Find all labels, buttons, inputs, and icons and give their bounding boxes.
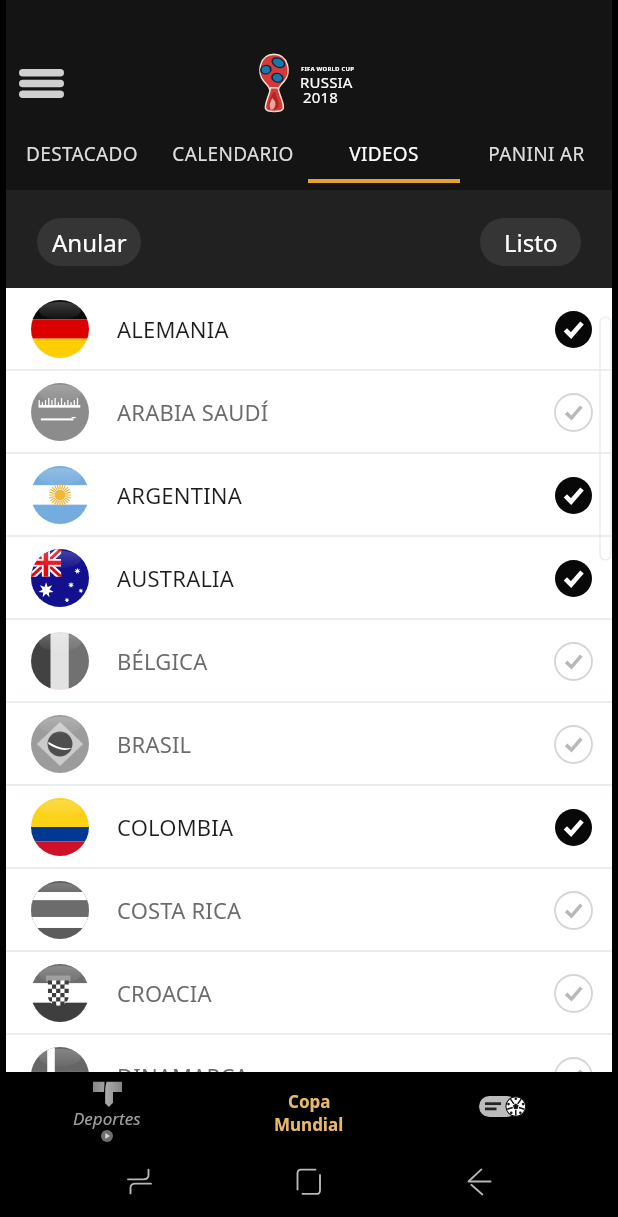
staticText: BRASIL: [117, 729, 192, 759]
button[interactable]: Selected: [551, 805, 595, 849]
button[interactable]: ARGENTINA: [6, 454, 612, 535]
staticText: FIFA WORLD CUP: [301, 65, 355, 73]
button[interactable]: Recents: [115, 1157, 163, 1205]
staticText: CALENDARIO: [172, 141, 294, 167]
staticText: Copa: [288, 1090, 331, 1113]
button[interactable]: Anular: [37, 218, 141, 266]
staticText: 2018: [303, 87, 339, 107]
staticText: ARABIA SAUDÍ: [117, 397, 269, 427]
button[interactable]: Selected: [551, 473, 595, 517]
button[interactable]: COSTA RICA: [6, 869, 612, 950]
button[interactable]: Futbol Mode: [410, 1072, 612, 1145]
button[interactable]: CALENDARIO: [157, 130, 308, 190]
button[interactable]: Not selected: [551, 722, 595, 766]
button[interactable]: VIDEOS: [308, 130, 460, 190]
staticText: AUSTRALIA: [117, 563, 235, 593]
staticText: BÉLGICA: [117, 646, 208, 676]
staticText: Listo: [504, 226, 558, 259]
button[interactable]: Selected: [551, 556, 595, 600]
button[interactable]: ARABIA SAUDÍ: [6, 371, 612, 452]
button[interactable]: Menu: [14, 56, 68, 110]
staticText: DESTACADO: [26, 141, 138, 167]
button[interactable]: Not selected: [551, 971, 595, 1015]
button[interactable]: Not selected: [551, 888, 595, 932]
button[interactable]: Not selected: [551, 639, 595, 683]
staticText: PANINI AR: [488, 141, 585, 167]
staticText: DINAMARCA: [117, 1061, 249, 1072]
staticText: Anular: [52, 226, 127, 259]
button[interactable]: CROACIA: [6, 952, 612, 1033]
button[interactable]: Not selected: [551, 390, 595, 434]
staticText: COLOMBIA: [117, 812, 234, 842]
button[interactable]: Listo: [480, 218, 581, 266]
button[interactable]: Selected: [551, 307, 595, 351]
button[interactable]: Back: [455, 1157, 503, 1205]
button[interactable]: Not selected: [551, 1054, 595, 1072]
button[interactable]: DINAMARCA: [6, 1035, 612, 1072]
staticText: ALEMANIA: [117, 314, 229, 344]
button[interactable]: Home: [284, 1157, 332, 1205]
staticText: RUSSIA: [300, 72, 353, 92]
button[interactable]: PANINI AR: [460, 130, 612, 190]
staticText: ARGENTINA: [117, 480, 242, 510]
button[interactable]: Telemundo Deportes: [6, 1072, 208, 1145]
staticText: COSTA RICA: [117, 895, 242, 925]
staticText: VIDEOS: [349, 141, 419, 167]
button[interactable]: Copa: [208, 1072, 410, 1145]
button[interactable]: BÉLGICA: [6, 620, 612, 701]
staticText: CROACIA: [117, 978, 212, 1008]
staticText: Deportes: [73, 1107, 141, 1130]
button[interactable]: BRASIL: [6, 703, 612, 784]
button[interactable]: AUSTRALIA: [6, 537, 612, 618]
button[interactable]: ALEMANIA: [6, 288, 612, 369]
staticText: Mundial: [274, 1113, 344, 1136]
button[interactable]: DESTACADO: [6, 130, 157, 190]
button[interactable]: COLOMBIA: [6, 786, 612, 867]
